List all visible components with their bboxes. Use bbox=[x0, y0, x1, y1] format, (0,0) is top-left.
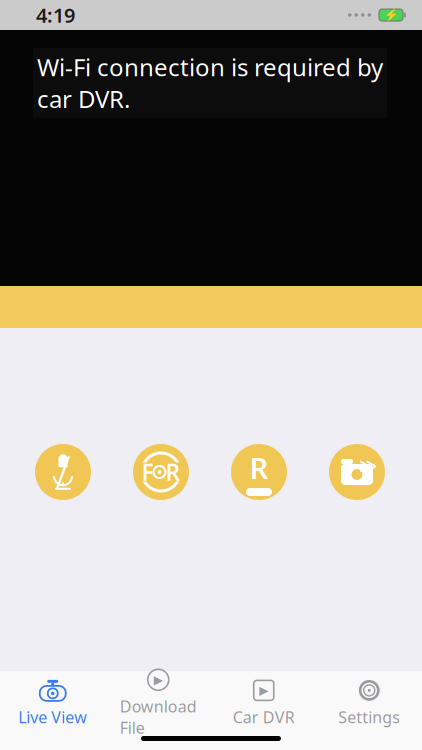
staticText: F bbox=[141, 457, 153, 487]
staticText: ▶ bbox=[154, 673, 163, 686]
staticText: ⚡ bbox=[383, 8, 398, 22]
staticText: Live View bbox=[18, 706, 87, 728]
button[interactable]: Live View bbox=[0, 678, 105, 726]
staticText: Download File bbox=[120, 696, 197, 738]
button[interactable]: ▶ bbox=[105, 678, 211, 726]
button[interactable]: Settings bbox=[316, 678, 422, 726]
button[interactable]: Capture photo bbox=[329, 444, 385, 500]
staticText: 4:19 bbox=[36, 2, 75, 28]
staticText: ▶ bbox=[259, 684, 268, 697]
button[interactable]: ▶ bbox=[211, 678, 316, 726]
button[interactable]: Mute microphone bbox=[35, 444, 91, 500]
staticText: Settings bbox=[338, 706, 400, 728]
staticText: Wi-Fi connection is required by car DVR. bbox=[37, 51, 383, 115]
staticText: R bbox=[165, 457, 180, 487]
staticText: Car DVR bbox=[233, 706, 295, 728]
button[interactable]: Switch front or rear camera bbox=[133, 444, 189, 500]
button[interactable]: Rear camera record bbox=[231, 444, 287, 500]
staticText: R bbox=[249, 448, 268, 487]
staticText: / bbox=[55, 442, 71, 502]
staticText: ≫ bbox=[359, 456, 377, 476]
